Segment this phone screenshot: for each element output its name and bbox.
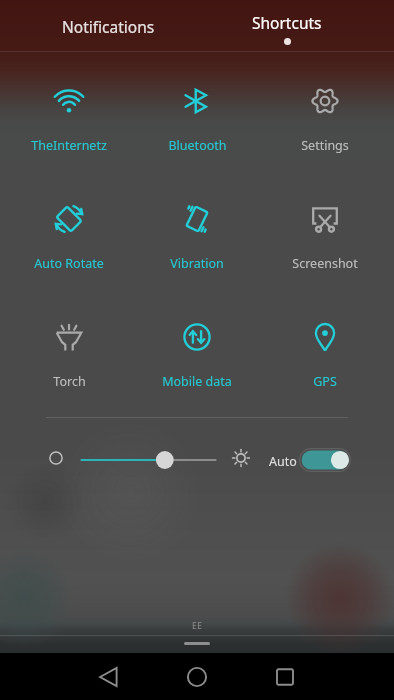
staticText: Shortcuts (252, 12, 322, 33)
staticText: Auto (269, 453, 297, 470)
button[interactable]: Auto brightness toggle (299, 448, 351, 472)
button[interactable]: Mobile data (133, 322, 261, 390)
button[interactable]: Home (167, 653, 227, 700)
staticText: Screenshot (292, 255, 358, 272)
button[interactable]: Notifications (0, 0, 197, 51)
staticText: Auto Rotate (34, 255, 104, 272)
staticText: Settings (301, 137, 349, 154)
button[interactable]: TheInternetz (5, 86, 133, 154)
staticText: Bluetooth (168, 137, 227, 154)
button[interactable]: GPS (261, 322, 389, 390)
staticText: TheInternetz (31, 137, 107, 154)
button[interactable]: Recent apps (255, 653, 315, 700)
button[interactable]: Drag handle (184, 642, 210, 645)
button[interactable]: Bluetooth (133, 86, 261, 154)
staticText: Torch (53, 373, 86, 390)
staticText: Vibration (170, 255, 224, 272)
button[interactable]: Vibration (133, 204, 261, 272)
button[interactable]: Torch (5, 322, 133, 390)
button[interactable]: Shortcuts (197, 0, 394, 51)
button[interactable]: Maximum brightness (228, 445, 253, 470)
button[interactable]: Settings (261, 86, 389, 154)
staticText: EE (192, 620, 203, 632)
button[interactable]: Back (79, 653, 139, 700)
button[interactable]: Screenshot (261, 204, 389, 272)
staticText: Mobile data (162, 373, 232, 390)
button[interactable]: Brightness slider (74, 445, 224, 475)
button[interactable]: Auto Rotate (5, 204, 133, 272)
staticText: Notifications (62, 16, 155, 37)
staticText: GPS (313, 373, 337, 390)
button[interactable]: Minimum brightness (43, 445, 68, 470)
